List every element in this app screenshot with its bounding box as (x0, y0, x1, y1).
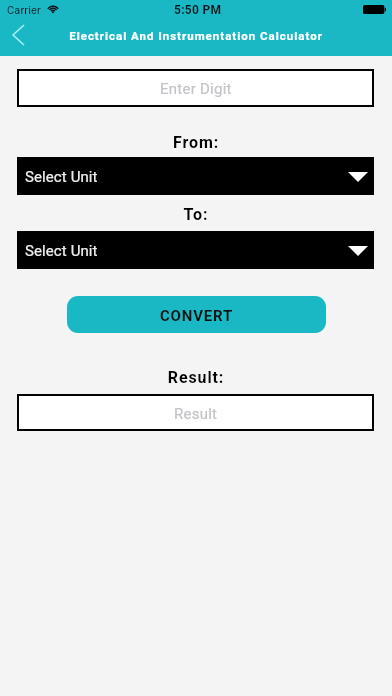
button[interactable]: Back (0, 17, 36, 53)
button[interactable]: Select Unit (17, 157, 374, 195)
staticText: 5:50 PM (174, 3, 222, 17)
staticText: Select Unit (25, 168, 98, 186)
button[interactable]: Select Unit (17, 231, 374, 269)
button[interactable]: CONVERT (67, 296, 326, 333)
staticText: Enter Digit (160, 80, 232, 98)
staticText: Result (174, 405, 218, 423)
staticText: To: (0, 205, 392, 224)
staticText: CONVERT (160, 307, 234, 325)
staticText: Result: (0, 368, 392, 387)
button[interactable]: Enter Digit (17, 69, 374, 107)
staticText: Carrier (7, 4, 41, 17)
staticText: Electrical And Instrumentation Calculato… (0, 29, 392, 42)
button[interactable]: Result (17, 394, 374, 431)
staticText: Select Unit (25, 242, 98, 260)
staticText: From: (0, 133, 392, 152)
